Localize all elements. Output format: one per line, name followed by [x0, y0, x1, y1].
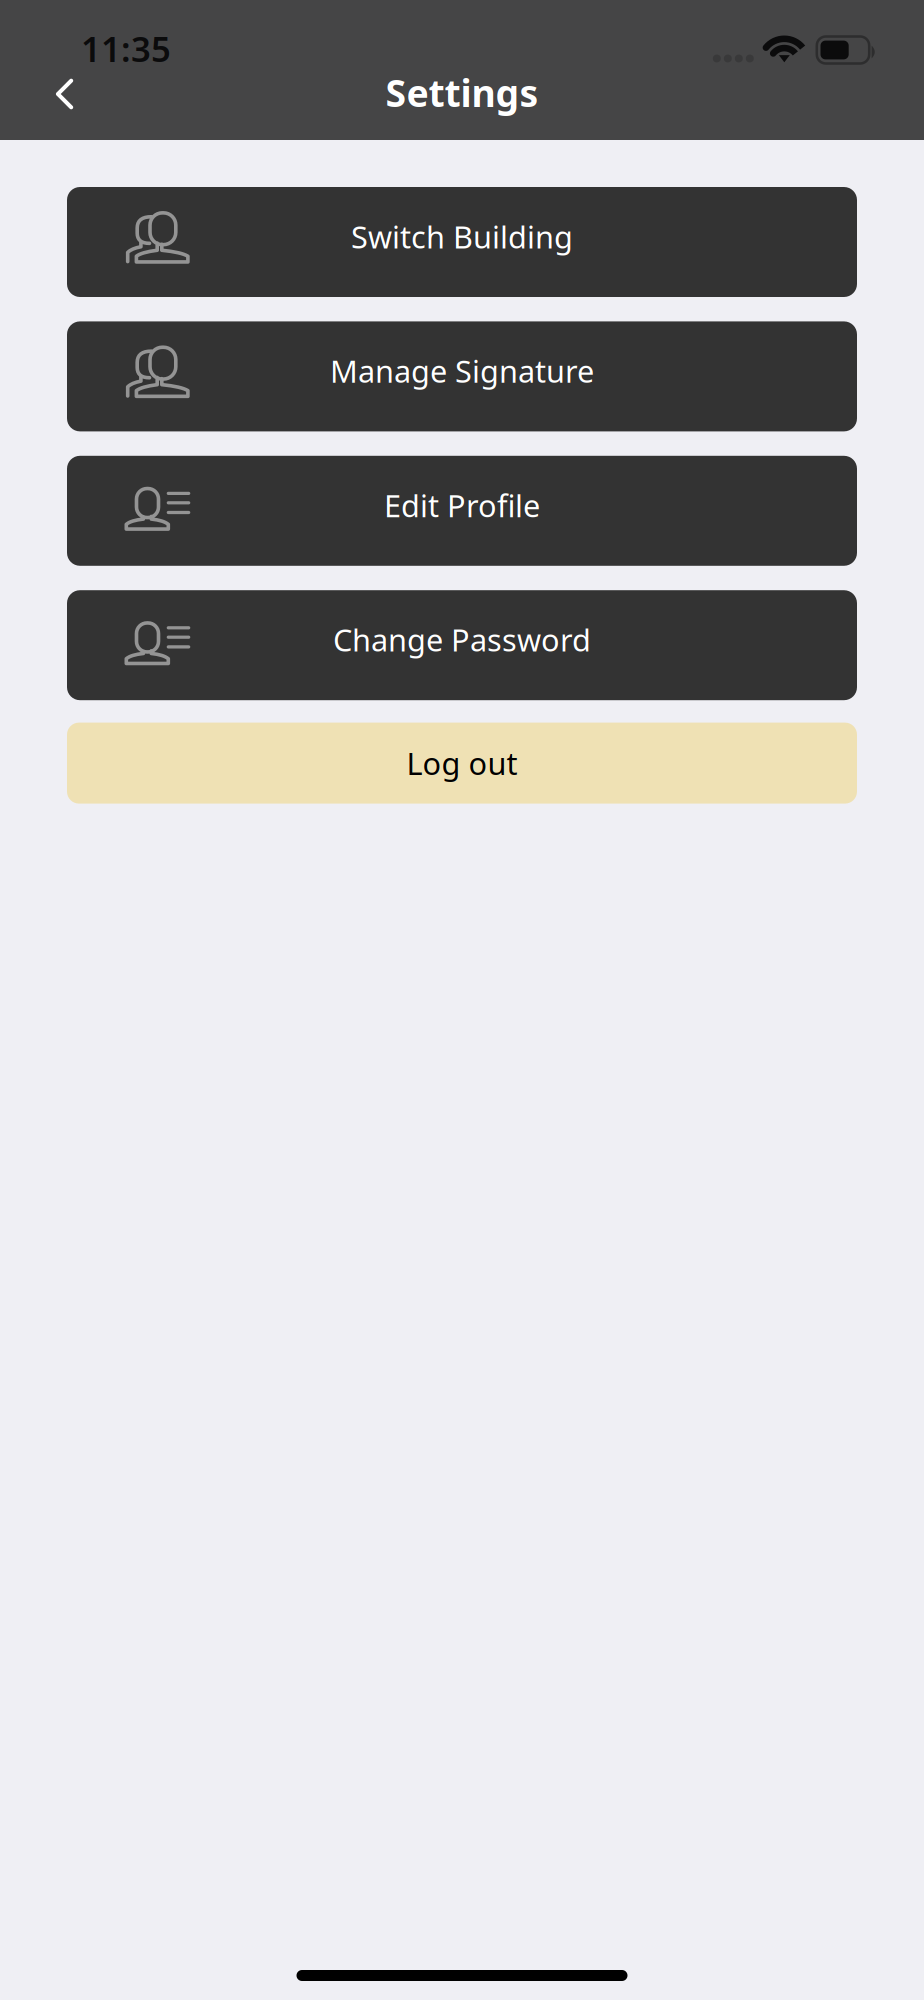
staticText: 11:35 [81, 25, 171, 71]
button[interactable]: Manage Signature [67, 321, 857, 431]
button[interactable]: Log out [67, 723, 857, 804]
button[interactable]: Switch Building [67, 187, 857, 297]
staticText: Log out [406, 743, 517, 783]
staticText: Settings [385, 68, 538, 117]
staticText: Edit Profile [384, 485, 540, 526]
button[interactable]: Edit Profile [67, 456, 857, 566]
staticText: Manage Signature [330, 350, 594, 391]
button[interactable]: Back [0, 64, 103, 120]
staticText: Switch Building [351, 216, 573, 257]
button[interactable]: Change Password [67, 590, 857, 700]
staticText: Change Password [333, 619, 591, 660]
